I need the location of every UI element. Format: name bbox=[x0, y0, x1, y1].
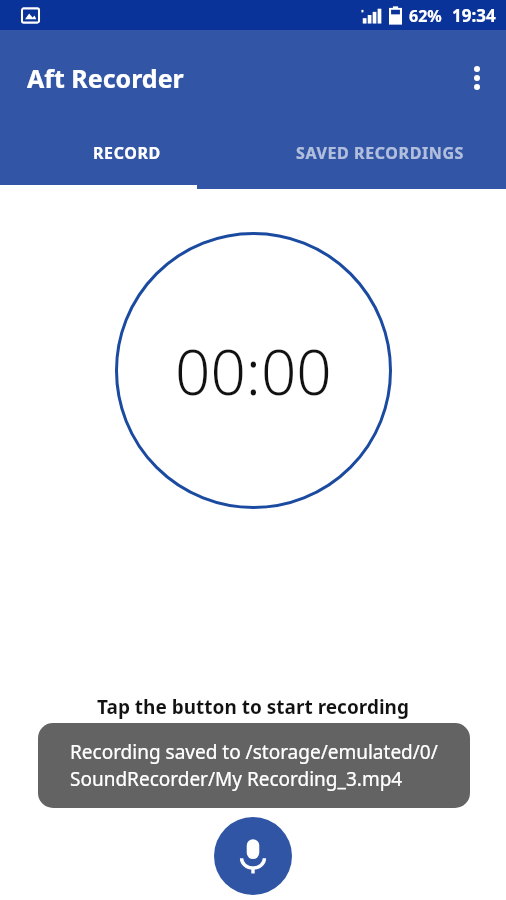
staticText: SAVED RECORDINGS bbox=[296, 142, 464, 164]
staticText: Tap the button to start recording bbox=[97, 694, 409, 720]
staticText: 62% bbox=[409, 5, 442, 27]
staticText: 00:00 bbox=[175, 329, 332, 413]
staticText: Aft Recorder bbox=[27, 61, 184, 95]
button[interactable]: RECORD bbox=[0, 125, 253, 189]
button[interactable]: Start recording bbox=[214, 817, 292, 895]
staticText: Recording saved to /storage/emulated/0/ … bbox=[70, 739, 438, 792]
button[interactable]: Recording timer bbox=[115, 232, 392, 509]
button[interactable]: SAVED RECORDINGS bbox=[253, 125, 506, 189]
staticText: RECORD bbox=[93, 142, 161, 164]
staticText: 19:34 bbox=[452, 4, 496, 27]
button[interactable]: More options bbox=[458, 59, 496, 97]
